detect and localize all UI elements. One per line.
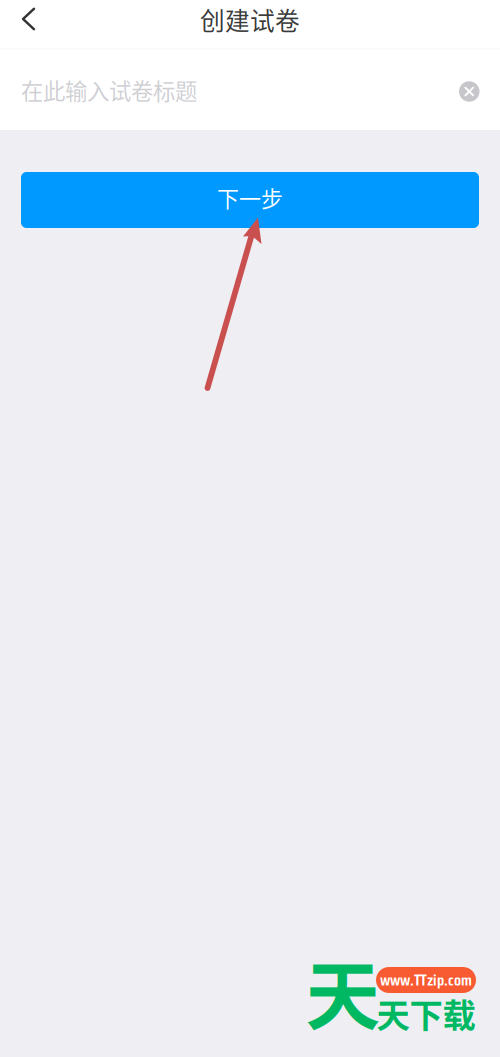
staticText: www.TTzip.com — [380, 967, 472, 993]
staticText: 下一步 — [217, 182, 283, 213]
button[interactable]: 下一步 — [21, 172, 479, 228]
button[interactable]: Back — [0, 0, 50, 48]
staticText: 在此输入试卷标题 — [21, 74, 197, 106]
staticText: 天 — [305, 937, 380, 1045]
staticText: 天下载 — [376, 989, 475, 1037]
button[interactable]: Clear text — [458, 50, 479, 130]
staticText: 创建试卷 — [200, 2, 300, 37]
button[interactable]: 在此输入试卷标题 — [21, 50, 458, 130]
